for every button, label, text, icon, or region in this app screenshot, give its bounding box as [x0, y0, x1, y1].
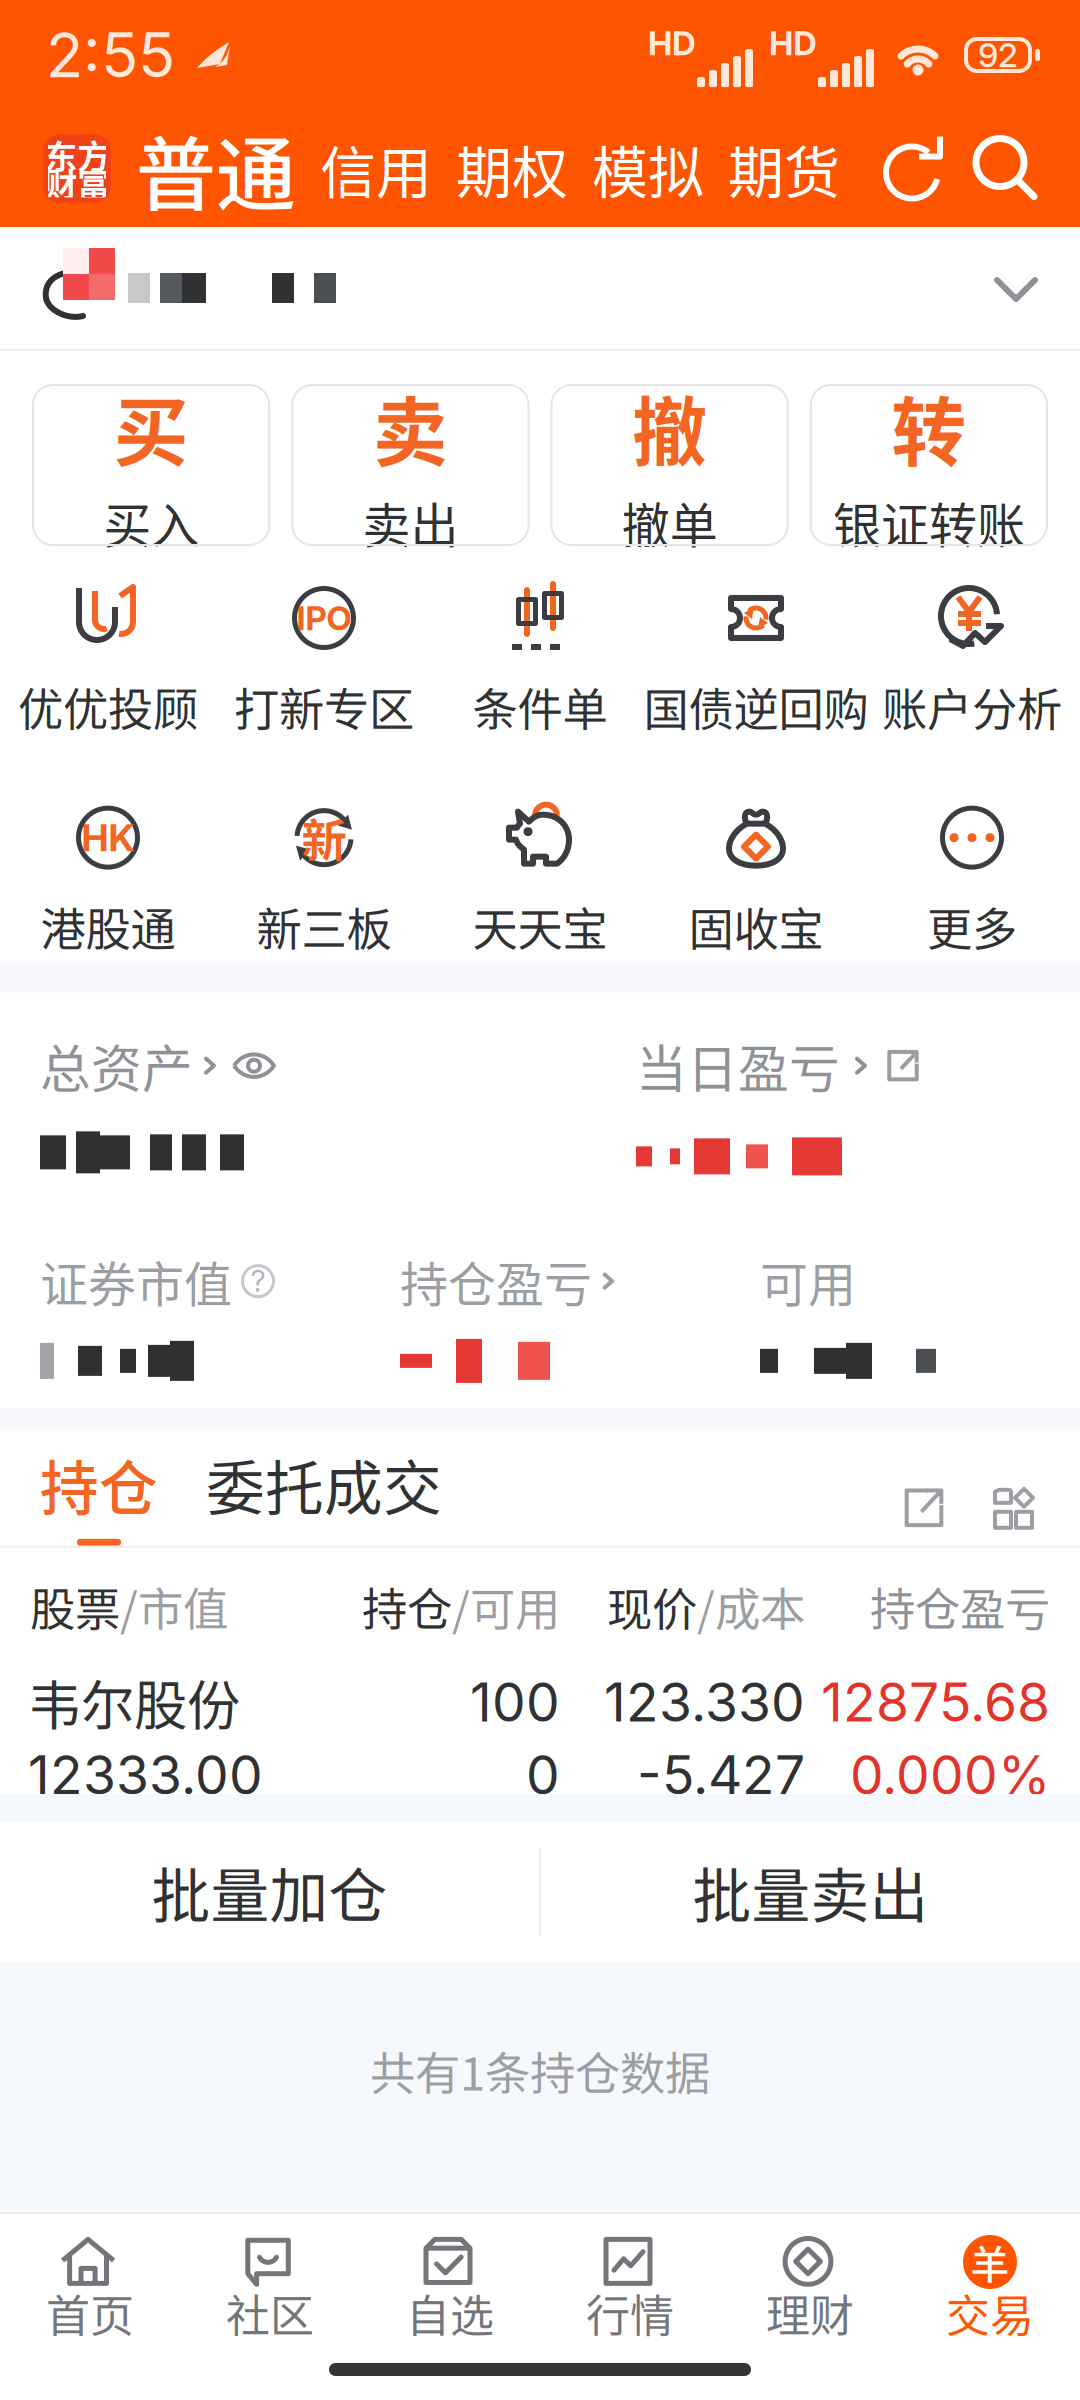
button[interactable]: 持仓	[40, 1442, 158, 1546]
button[interactable]: IPO	[216, 574, 432, 740]
staticText: 优优投顾	[18, 674, 198, 740]
button[interactable]: 国债逆回购	[648, 574, 864, 740]
button[interactable]: 羊	[900, 2233, 1080, 2331]
button[interactable]: 模拟	[568, 118, 704, 219]
button[interactable]: 社区	[180, 2233, 360, 2331]
button[interactable]: HK	[0, 794, 216, 959]
staticText: 更多	[927, 894, 1017, 959]
staticText: 证券市值	[40, 1246, 232, 1316]
button[interactable]: 天天宝	[432, 794, 648, 959]
button[interactable]: 搜索	[948, 132, 1042, 204]
staticText: HD	[769, 23, 817, 63]
staticText: 期货	[728, 128, 840, 209]
staticText: 首页	[46, 2281, 134, 2345]
staticText: 信用	[320, 128, 432, 209]
button[interactable]: 韦尔股份	[0, 1639, 1080, 1807]
staticText: 持仓	[362, 1574, 452, 1639]
staticText: 当日盈亏	[636, 1029, 840, 1102]
staticText: /市值	[120, 1574, 228, 1639]
staticText: 12333.00	[28, 1743, 263, 1807]
button[interactable]: 切换视图	[948, 1486, 1036, 1546]
button[interactable]: 理财	[720, 2233, 900, 2331]
staticText: 撤单	[622, 487, 718, 557]
staticText: IPO	[296, 598, 351, 638]
staticText: 委托成交	[206, 1442, 442, 1527]
staticText: 模拟	[592, 128, 704, 209]
button[interactable]: 批量卖出	[541, 1822, 1080, 1962]
staticText: 买入	[103, 487, 199, 557]
button[interactable]: 更多	[864, 794, 1080, 959]
button[interactable]: 条件单	[432, 574, 648, 740]
button[interactable]: 账户分析	[864, 574, 1080, 740]
button[interactable]: 固收宝	[648, 794, 864, 959]
staticText: ?	[250, 1263, 265, 1299]
button[interactable]: 卖	[291, 384, 529, 546]
staticText: 银证转账	[833, 487, 1025, 557]
staticText: 韦尔股份	[28, 1663, 240, 1741]
staticText: HK	[81, 815, 134, 860]
button[interactable]: 首页	[0, 2233, 180, 2331]
staticText: 卖	[373, 373, 448, 481]
staticText: 批量卖出	[692, 1849, 928, 1934]
staticText: 东方	[44, 130, 110, 179]
staticText: 财富	[44, 158, 110, 207]
staticText: 账户分析	[882, 674, 1062, 740]
button[interactable]: 撤	[550, 384, 789, 546]
button[interactable]: 期货	[704, 118, 840, 219]
staticText: /成本	[697, 1574, 805, 1639]
staticText: 股票	[30, 1574, 120, 1639]
staticText: 新	[301, 805, 346, 870]
staticText: 100	[470, 1670, 560, 1734]
button[interactable]: 期权	[432, 118, 568, 219]
button[interactable]: 自选	[360, 2233, 540, 2331]
staticText: 社区	[226, 2281, 314, 2345]
staticText: 普通	[136, 111, 296, 226]
staticText: 共有1条持仓数据	[370, 2038, 710, 2104]
staticText: 新三板	[256, 894, 391, 959]
staticText: 交易	[946, 2281, 1034, 2345]
button[interactable]: 刷新	[880, 134, 948, 202]
staticText: 12875.68	[821, 1670, 1050, 1734]
staticText: 持仓	[40, 1442, 158, 1527]
staticText: 持仓盈亏	[870, 1574, 1050, 1639]
staticText: 可用	[760, 1246, 856, 1316]
staticText: 买	[114, 373, 189, 481]
staticText: /可用	[452, 1574, 560, 1639]
staticText: 自选	[406, 2281, 494, 2345]
button[interactable]: 新	[216, 794, 432, 959]
button[interactable]: 委托成交	[158, 1442, 442, 1546]
staticText: 持仓盈亏	[400, 1246, 592, 1316]
button[interactable]	[0, 227, 1080, 349]
staticText: 2:55	[46, 18, 175, 92]
staticText: -5.427	[637, 1743, 805, 1807]
button[interactable]: 优优投顾	[0, 574, 216, 740]
button[interactable]: 信用	[296, 118, 432, 219]
staticText: 转	[891, 373, 966, 481]
button[interactable]: 普通	[110, 101, 296, 236]
staticText: 0.000%	[850, 1743, 1050, 1807]
staticText: 期权	[456, 128, 568, 209]
staticText: 批量加仓	[151, 1849, 387, 1934]
staticText: 固收宝	[688, 894, 823, 959]
staticText: 天天宝	[472, 894, 607, 959]
staticText: HD	[648, 23, 696, 63]
button[interactable]: 买	[32, 384, 270, 546]
staticText: 123.330	[604, 1670, 805, 1734]
staticText: 总资产	[40, 1029, 193, 1102]
button[interactable]: 行情	[540, 2233, 720, 2331]
button[interactable]: 转	[810, 384, 1048, 546]
staticText: 羊	[970, 2234, 1009, 2290]
staticText: 港股通	[40, 894, 175, 959]
button[interactable]: 分享	[900, 1484, 948, 1546]
button[interactable]: 批量加仓	[0, 1822, 539, 1962]
staticText: 行情	[586, 2281, 674, 2345]
staticText: 现价	[607, 1574, 697, 1639]
staticText: 国债逆回购	[643, 674, 868, 740]
staticText: 0	[526, 1743, 560, 1807]
staticText: 卖出	[362, 487, 458, 557]
staticText: 92	[978, 35, 1018, 75]
staticText: 打新专区	[234, 674, 414, 740]
staticText: 撤	[632, 373, 707, 481]
staticText: 理财	[766, 2281, 854, 2345]
staticText: 条件单	[472, 674, 607, 740]
